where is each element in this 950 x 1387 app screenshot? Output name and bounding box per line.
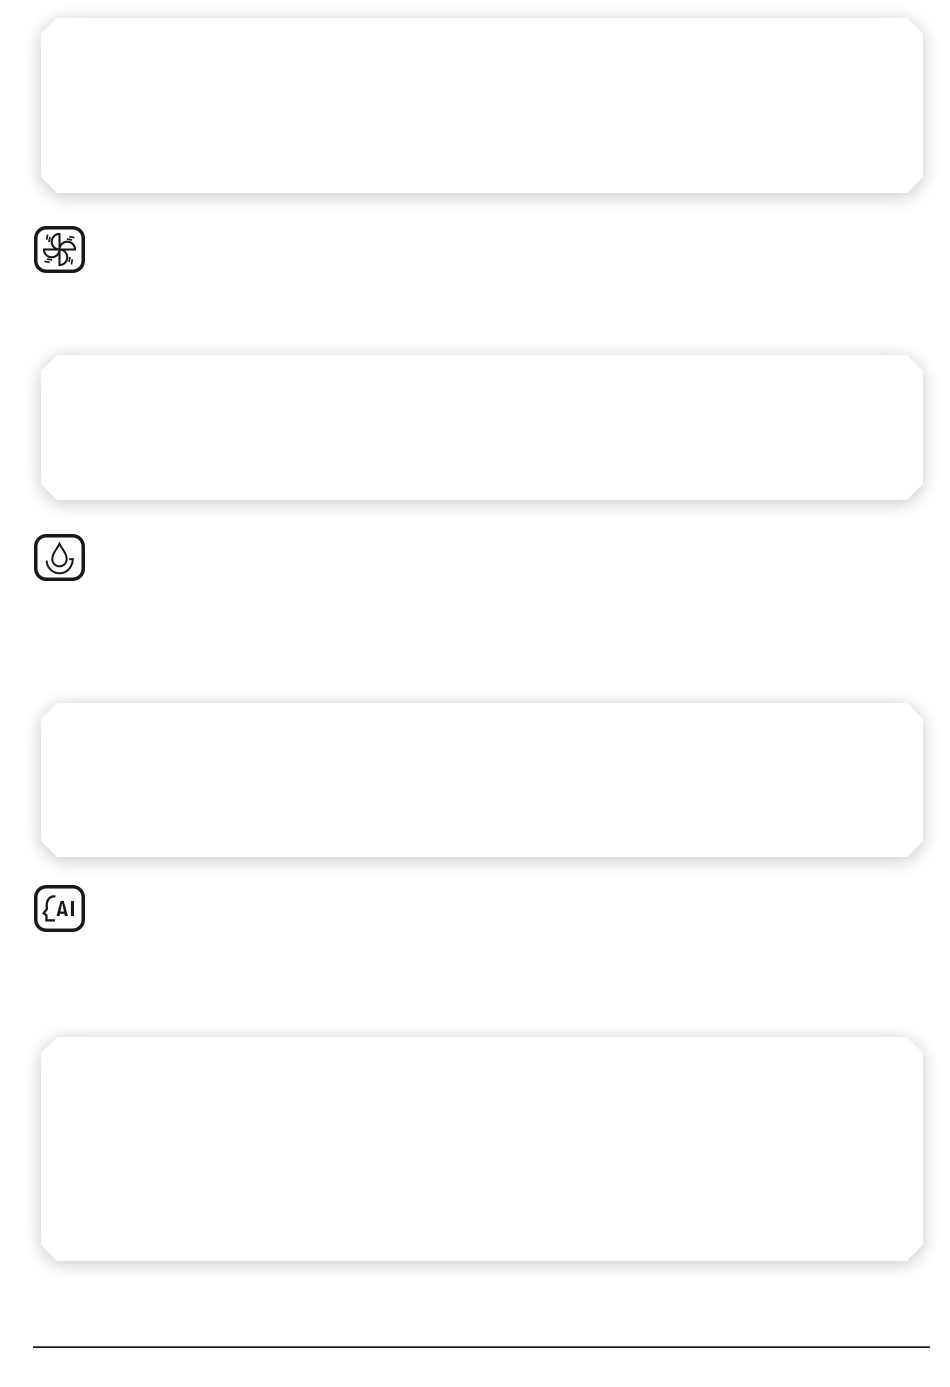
- button[interactable]: AI assistant: [34, 885, 85, 932]
- button[interactable]: Fan speed: [34, 226, 85, 273]
- button[interactable]: Humidity: [34, 534, 85, 581]
